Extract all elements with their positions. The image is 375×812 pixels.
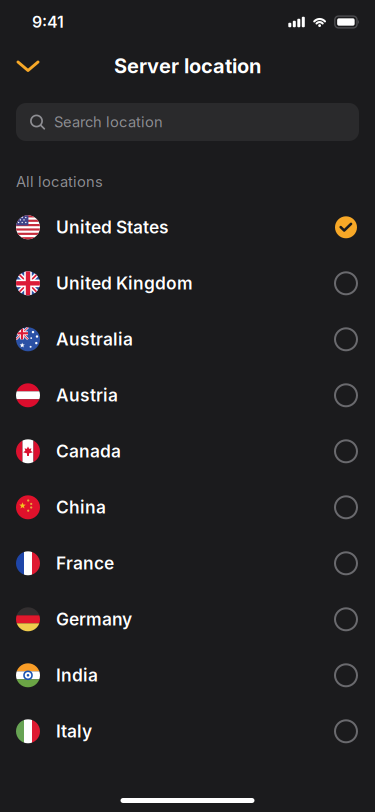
button[interactable]: United States [0,199,375,255]
staticText: Germany [56,609,132,629]
staticText: 9:41 [32,13,64,31]
staticText: Search location [54,113,163,131]
button[interactable]: China [0,479,375,535]
staticText: United States [56,217,169,237]
staticText: France [56,553,114,573]
button[interactable]: Australia [0,311,375,367]
button[interactable]: Canada [0,423,375,479]
staticText: All locations [16,173,103,190]
staticText: China [56,497,106,517]
staticText: Austria [56,385,118,405]
button[interactable]: Search location [16,103,359,141]
staticText: United Kingdom [56,273,193,293]
staticText: India [56,665,98,685]
staticText: Australia [56,329,133,349]
button[interactable] [0,50,41,81]
staticText: Server location [114,54,261,78]
button[interactable]: Germany [0,591,375,647]
button[interactable]: France [0,535,375,591]
staticText: Canada [56,441,121,461]
button[interactable]: Austria [0,367,375,423]
staticText: Italy [56,721,92,741]
button[interactable]: United Kingdom [0,255,375,311]
button[interactable]: India [0,647,375,703]
button[interactable]: Italy [0,703,375,759]
